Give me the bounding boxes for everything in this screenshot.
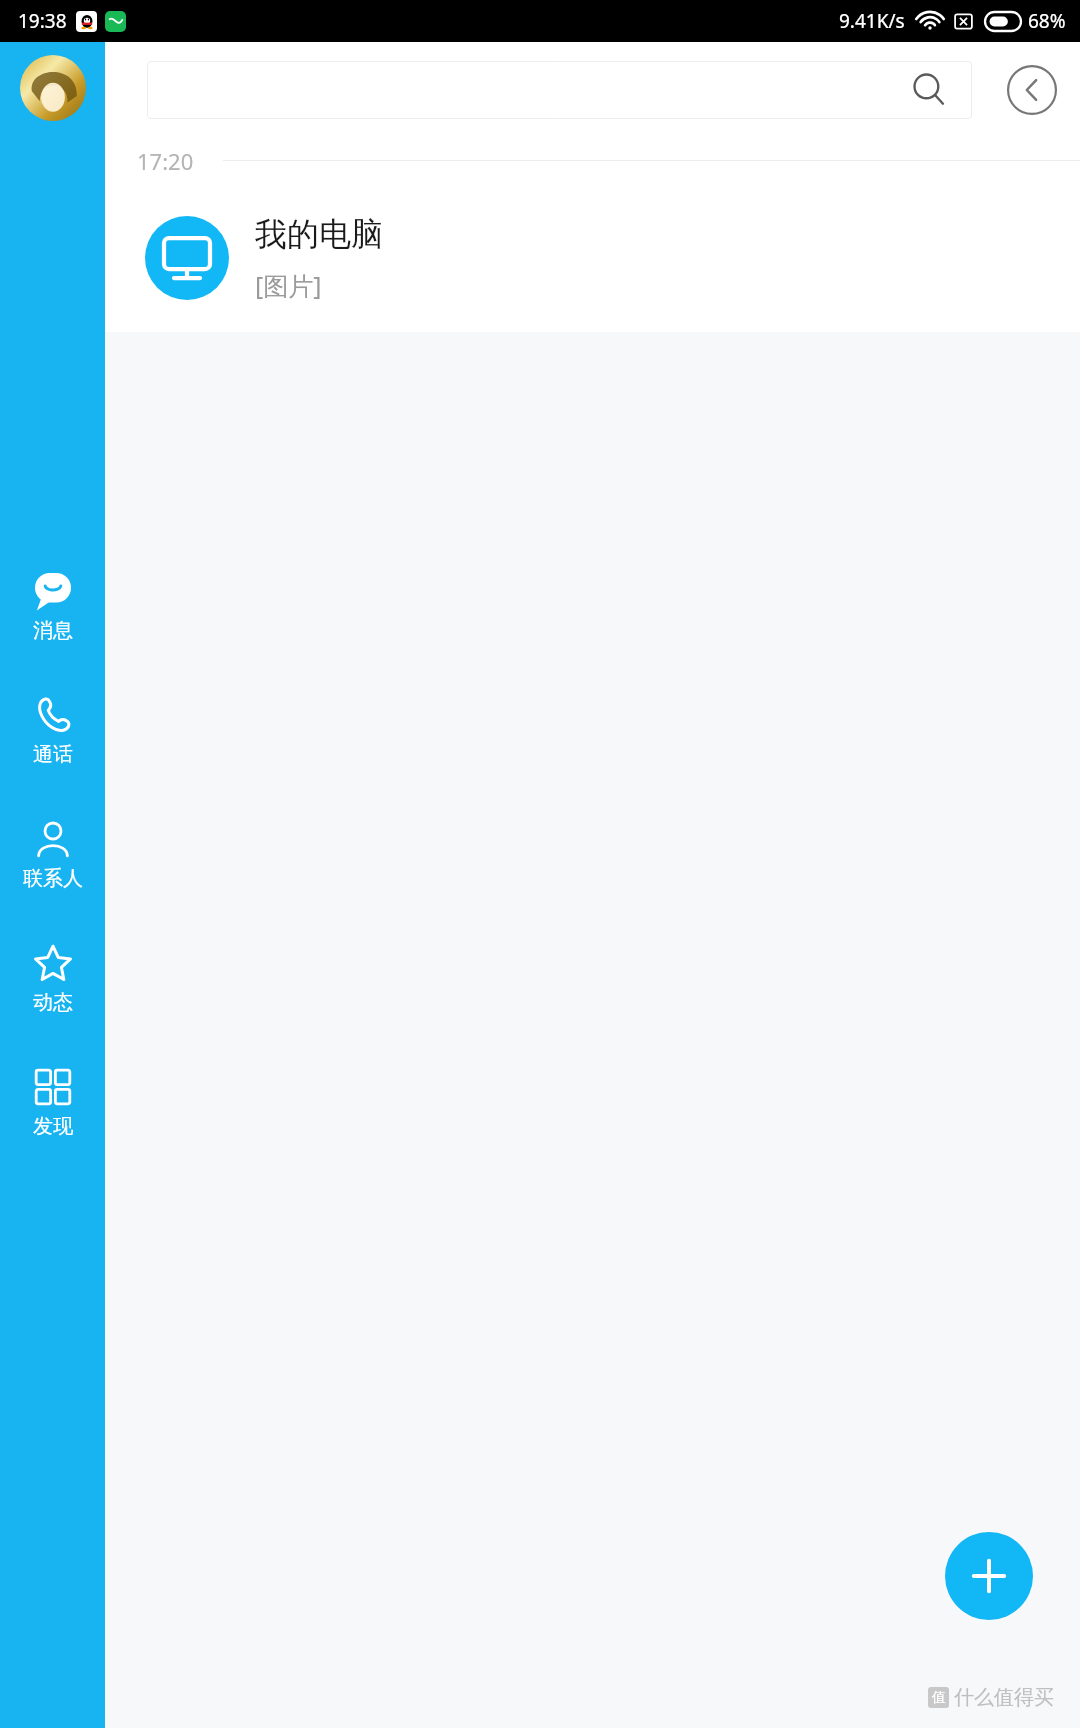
staticText: 我的电脑 [255,214,383,254]
staticText: 动态 [33,990,73,1015]
staticText: 联系人 [23,866,83,891]
button[interactable]: 动态 [0,941,105,1017]
button[interactable]: 发现 [0,1065,105,1141]
button[interactable]: Add [945,1532,1033,1620]
staticText: [图片] [255,268,322,302]
button[interactable]: 联系人 [0,817,105,893]
staticText: 消息 [33,618,73,643]
staticText: 通话 [33,742,73,767]
staticText: 什么值得买 [954,1685,1054,1710]
button[interactable]: 我的电脑 [105,184,1080,332]
staticText: 19:38 [18,8,67,34]
staticText: 68% [1028,8,1066,34]
staticText: 发现 [33,1114,73,1139]
button[interactable]: 通话 [0,693,105,769]
button[interactable]: Back [1006,64,1058,116]
button[interactable]: 消息 [0,569,105,645]
button[interactable]: Search [147,61,972,119]
button[interactable]: Profile [20,55,86,121]
staticText: 17:20 [137,146,194,176]
staticText: 值 [932,1689,946,1707]
staticText: 9.41K/s [839,8,905,34]
